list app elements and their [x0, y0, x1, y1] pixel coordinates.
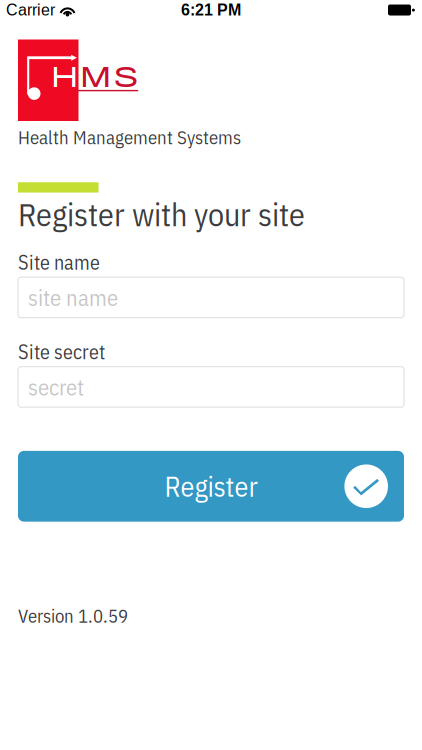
- staticText: Site secret: [18, 339, 105, 365]
- staticText: H: [51, 61, 79, 93]
- staticText: Health Management Systems: [18, 125, 241, 149]
- staticText: Site name: [18, 249, 100, 275]
- staticText: Register: [164, 468, 257, 504]
- staticText: Register with your site: [18, 194, 305, 235]
- staticText: Version 1.0.59: [18, 604, 128, 628]
- staticText: M: [80, 61, 112, 93]
- staticText: 6:21 PM: [181, 1, 241, 19]
- button[interactable]: Register: [18, 451, 404, 522]
- button[interactable]: site name: [18, 277, 404, 318]
- staticText: secret: [28, 372, 84, 402]
- staticText: site name: [28, 283, 118, 312]
- staticText: Carrier: [6, 1, 55, 19]
- staticText: S: [114, 61, 139, 93]
- button[interactable]: secret: [18, 367, 404, 407]
